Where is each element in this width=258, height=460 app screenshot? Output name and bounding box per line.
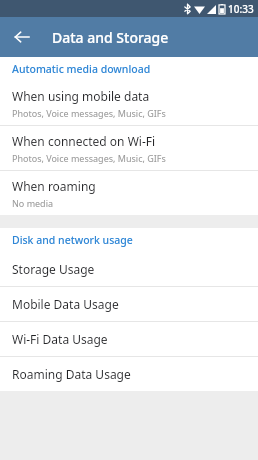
button[interactable]: Roaming Data Usage (0, 357, 258, 391)
staticText: No media (12, 197, 54, 209)
staticText: Photos, Voice messages, Music, GIFs (12, 107, 166, 119)
staticText: When connected on Wi-Fi (12, 133, 156, 149)
button[interactable]: Mobile Data Usage (0, 287, 258, 321)
staticText: When roaming (12, 178, 96, 194)
staticText: Wi-Fi Data Usage (12, 331, 108, 347)
staticText: Roaming Data Usage (12, 366, 131, 382)
button[interactable]: Back (6, 21, 38, 53)
staticText: Mobile Data Usage (12, 296, 119, 312)
button[interactable]: Storage Usage (0, 252, 258, 286)
button[interactable]: Wi-Fi Data Usage (0, 322, 258, 356)
staticText: Data and Storage (52, 28, 169, 47)
staticText: Storage Usage (12, 261, 95, 277)
staticText: 10:33 (228, 2, 254, 16)
button[interactable]: When using mobile data (0, 81, 258, 125)
staticText: Photos, Voice messages, Music, GIFs (12, 152, 166, 164)
staticText: When using mobile data (12, 88, 150, 104)
staticText: Automatic media download (12, 62, 151, 76)
button[interactable]: When roaming (0, 171, 258, 215)
staticText: Disk and network usage (12, 233, 133, 247)
button[interactable]: When connected on Wi-Fi (0, 126, 258, 170)
